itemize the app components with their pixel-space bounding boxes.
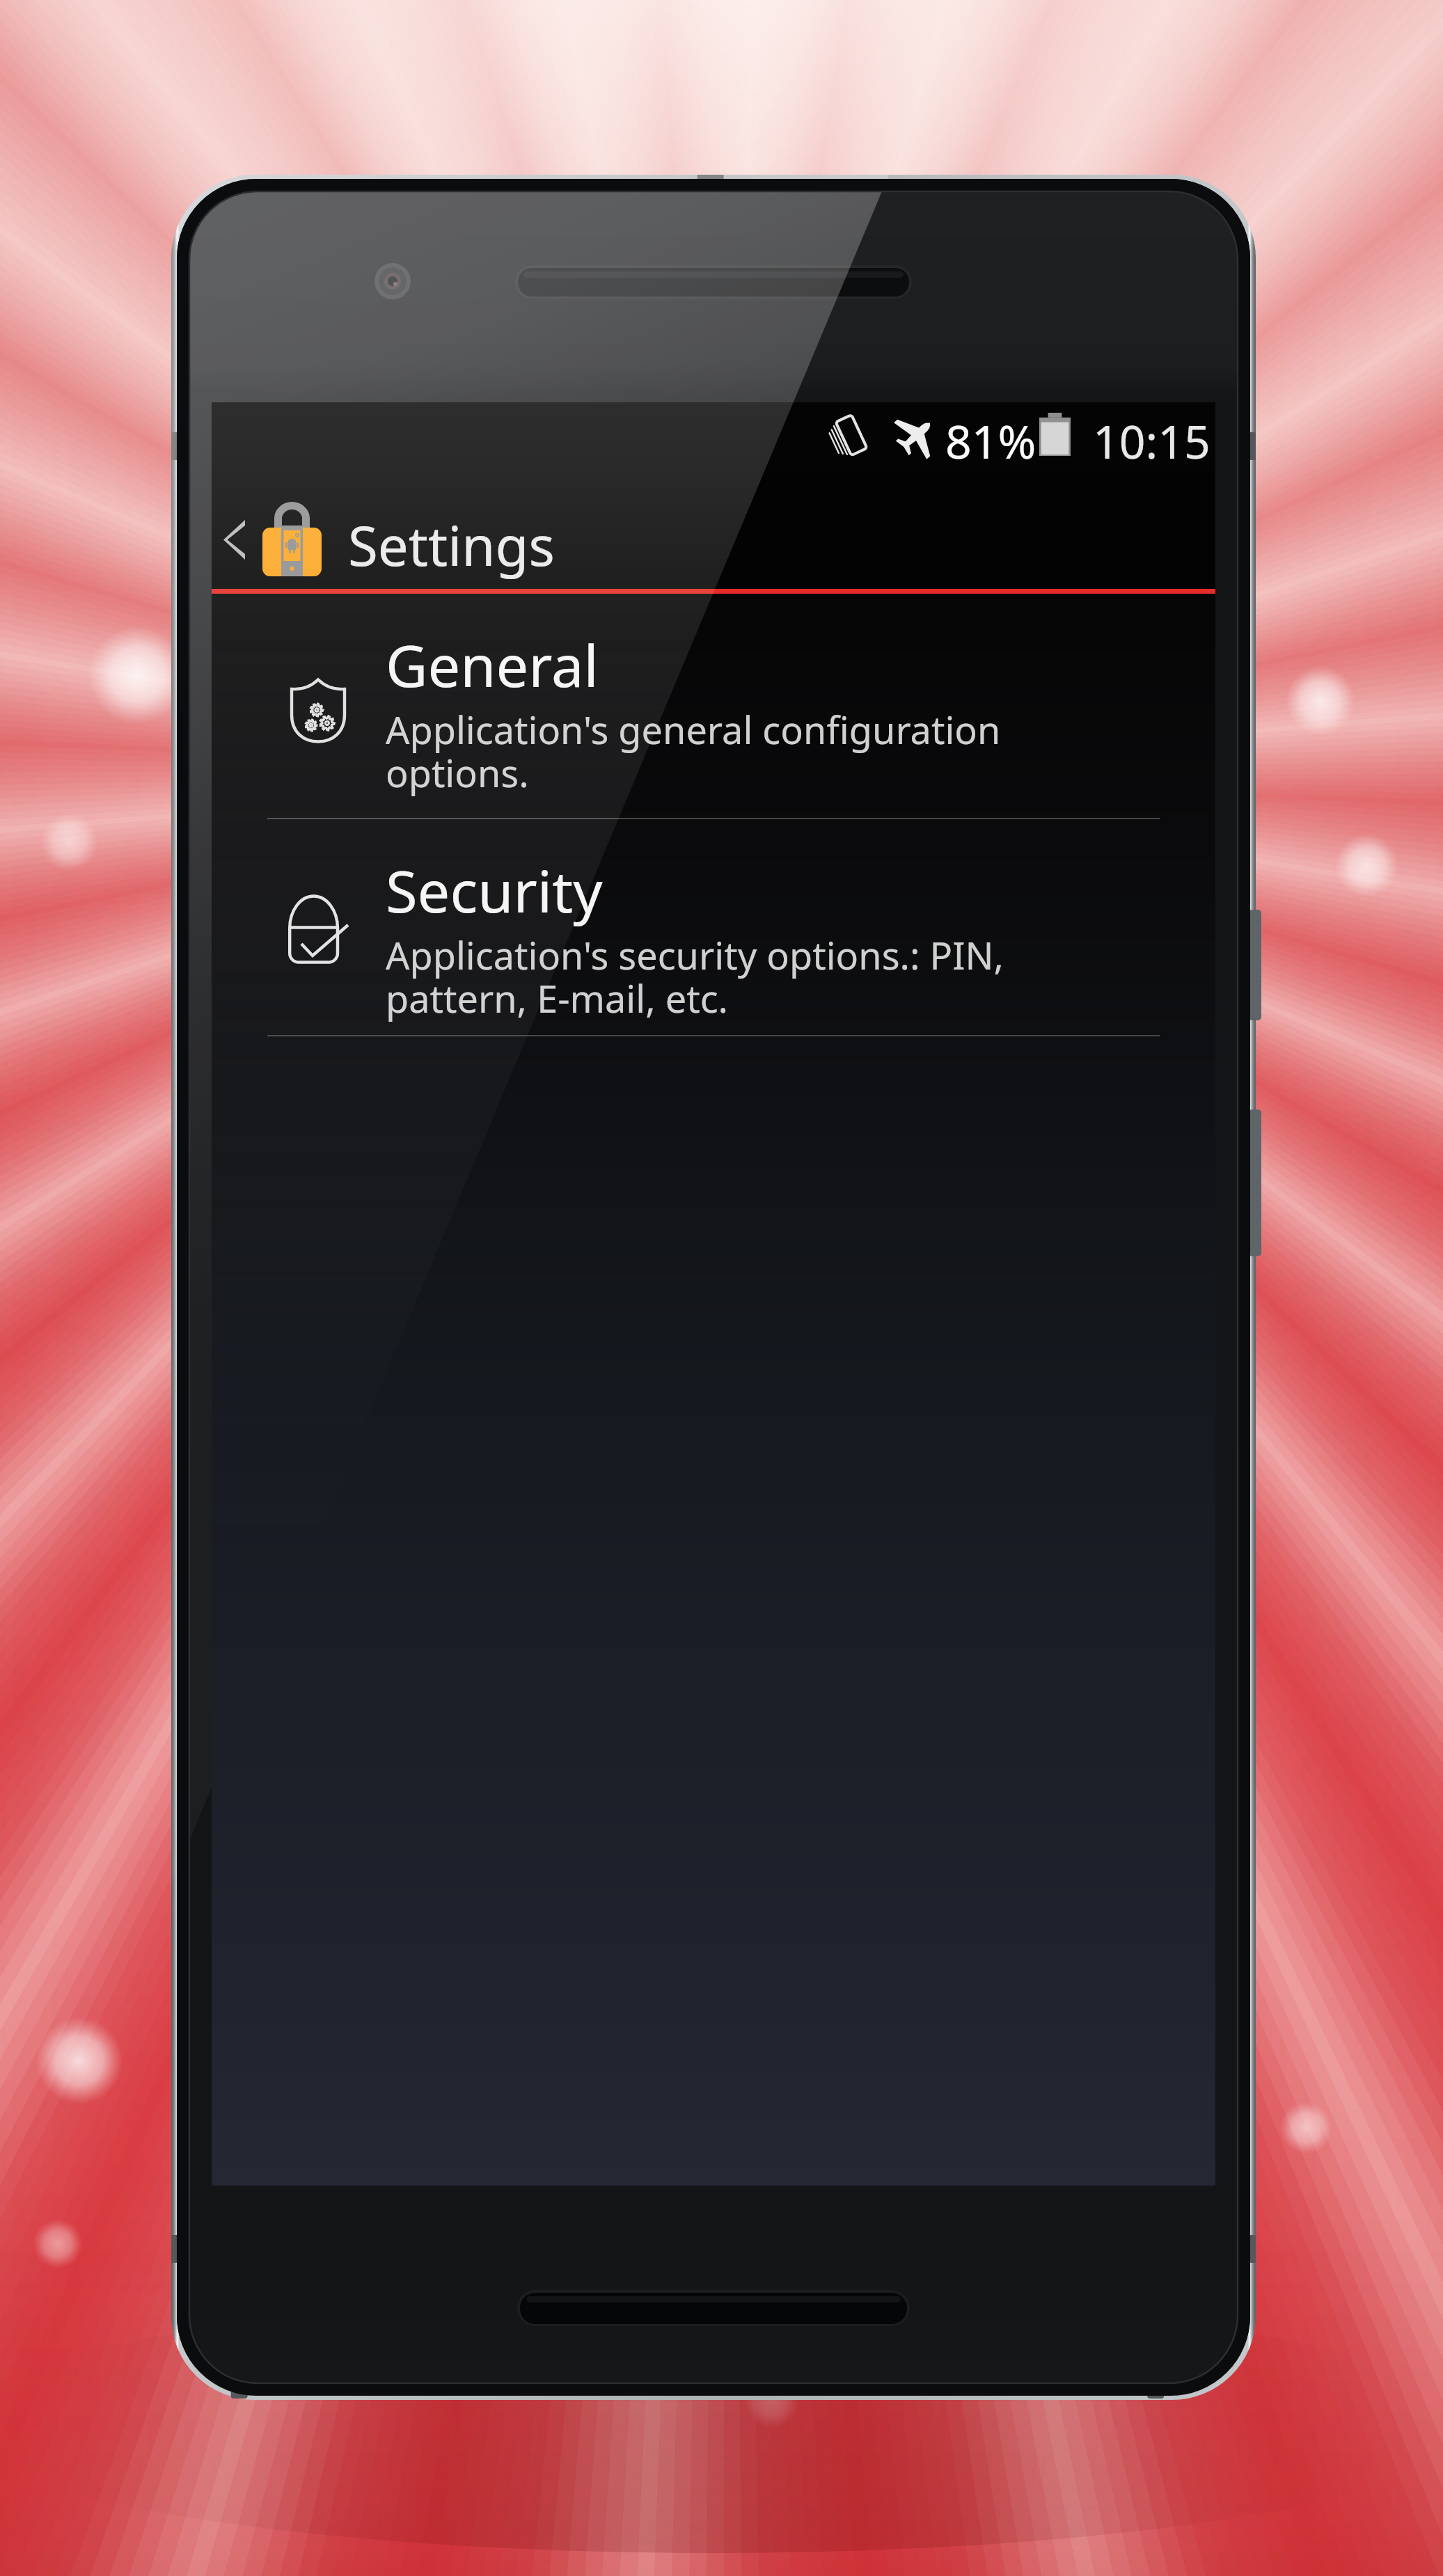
staticText: Application's security options.: PIN, pa… [386, 929, 1004, 1024]
button[interactable]: General [212, 594, 1215, 818]
staticText: 10:15 [1093, 409, 1211, 472]
staticText: General [386, 625, 599, 704]
staticText: Security [386, 851, 603, 929]
staticText: 81% [945, 409, 1036, 472]
staticText: Settings [348, 508, 555, 582]
button[interactable]: Back [212, 471, 1215, 589]
staticText: Application's general configuration opti… [386, 704, 1001, 798]
button[interactable]: Security [212, 819, 1215, 1035]
button[interactable]: Back [206, 503, 262, 576]
